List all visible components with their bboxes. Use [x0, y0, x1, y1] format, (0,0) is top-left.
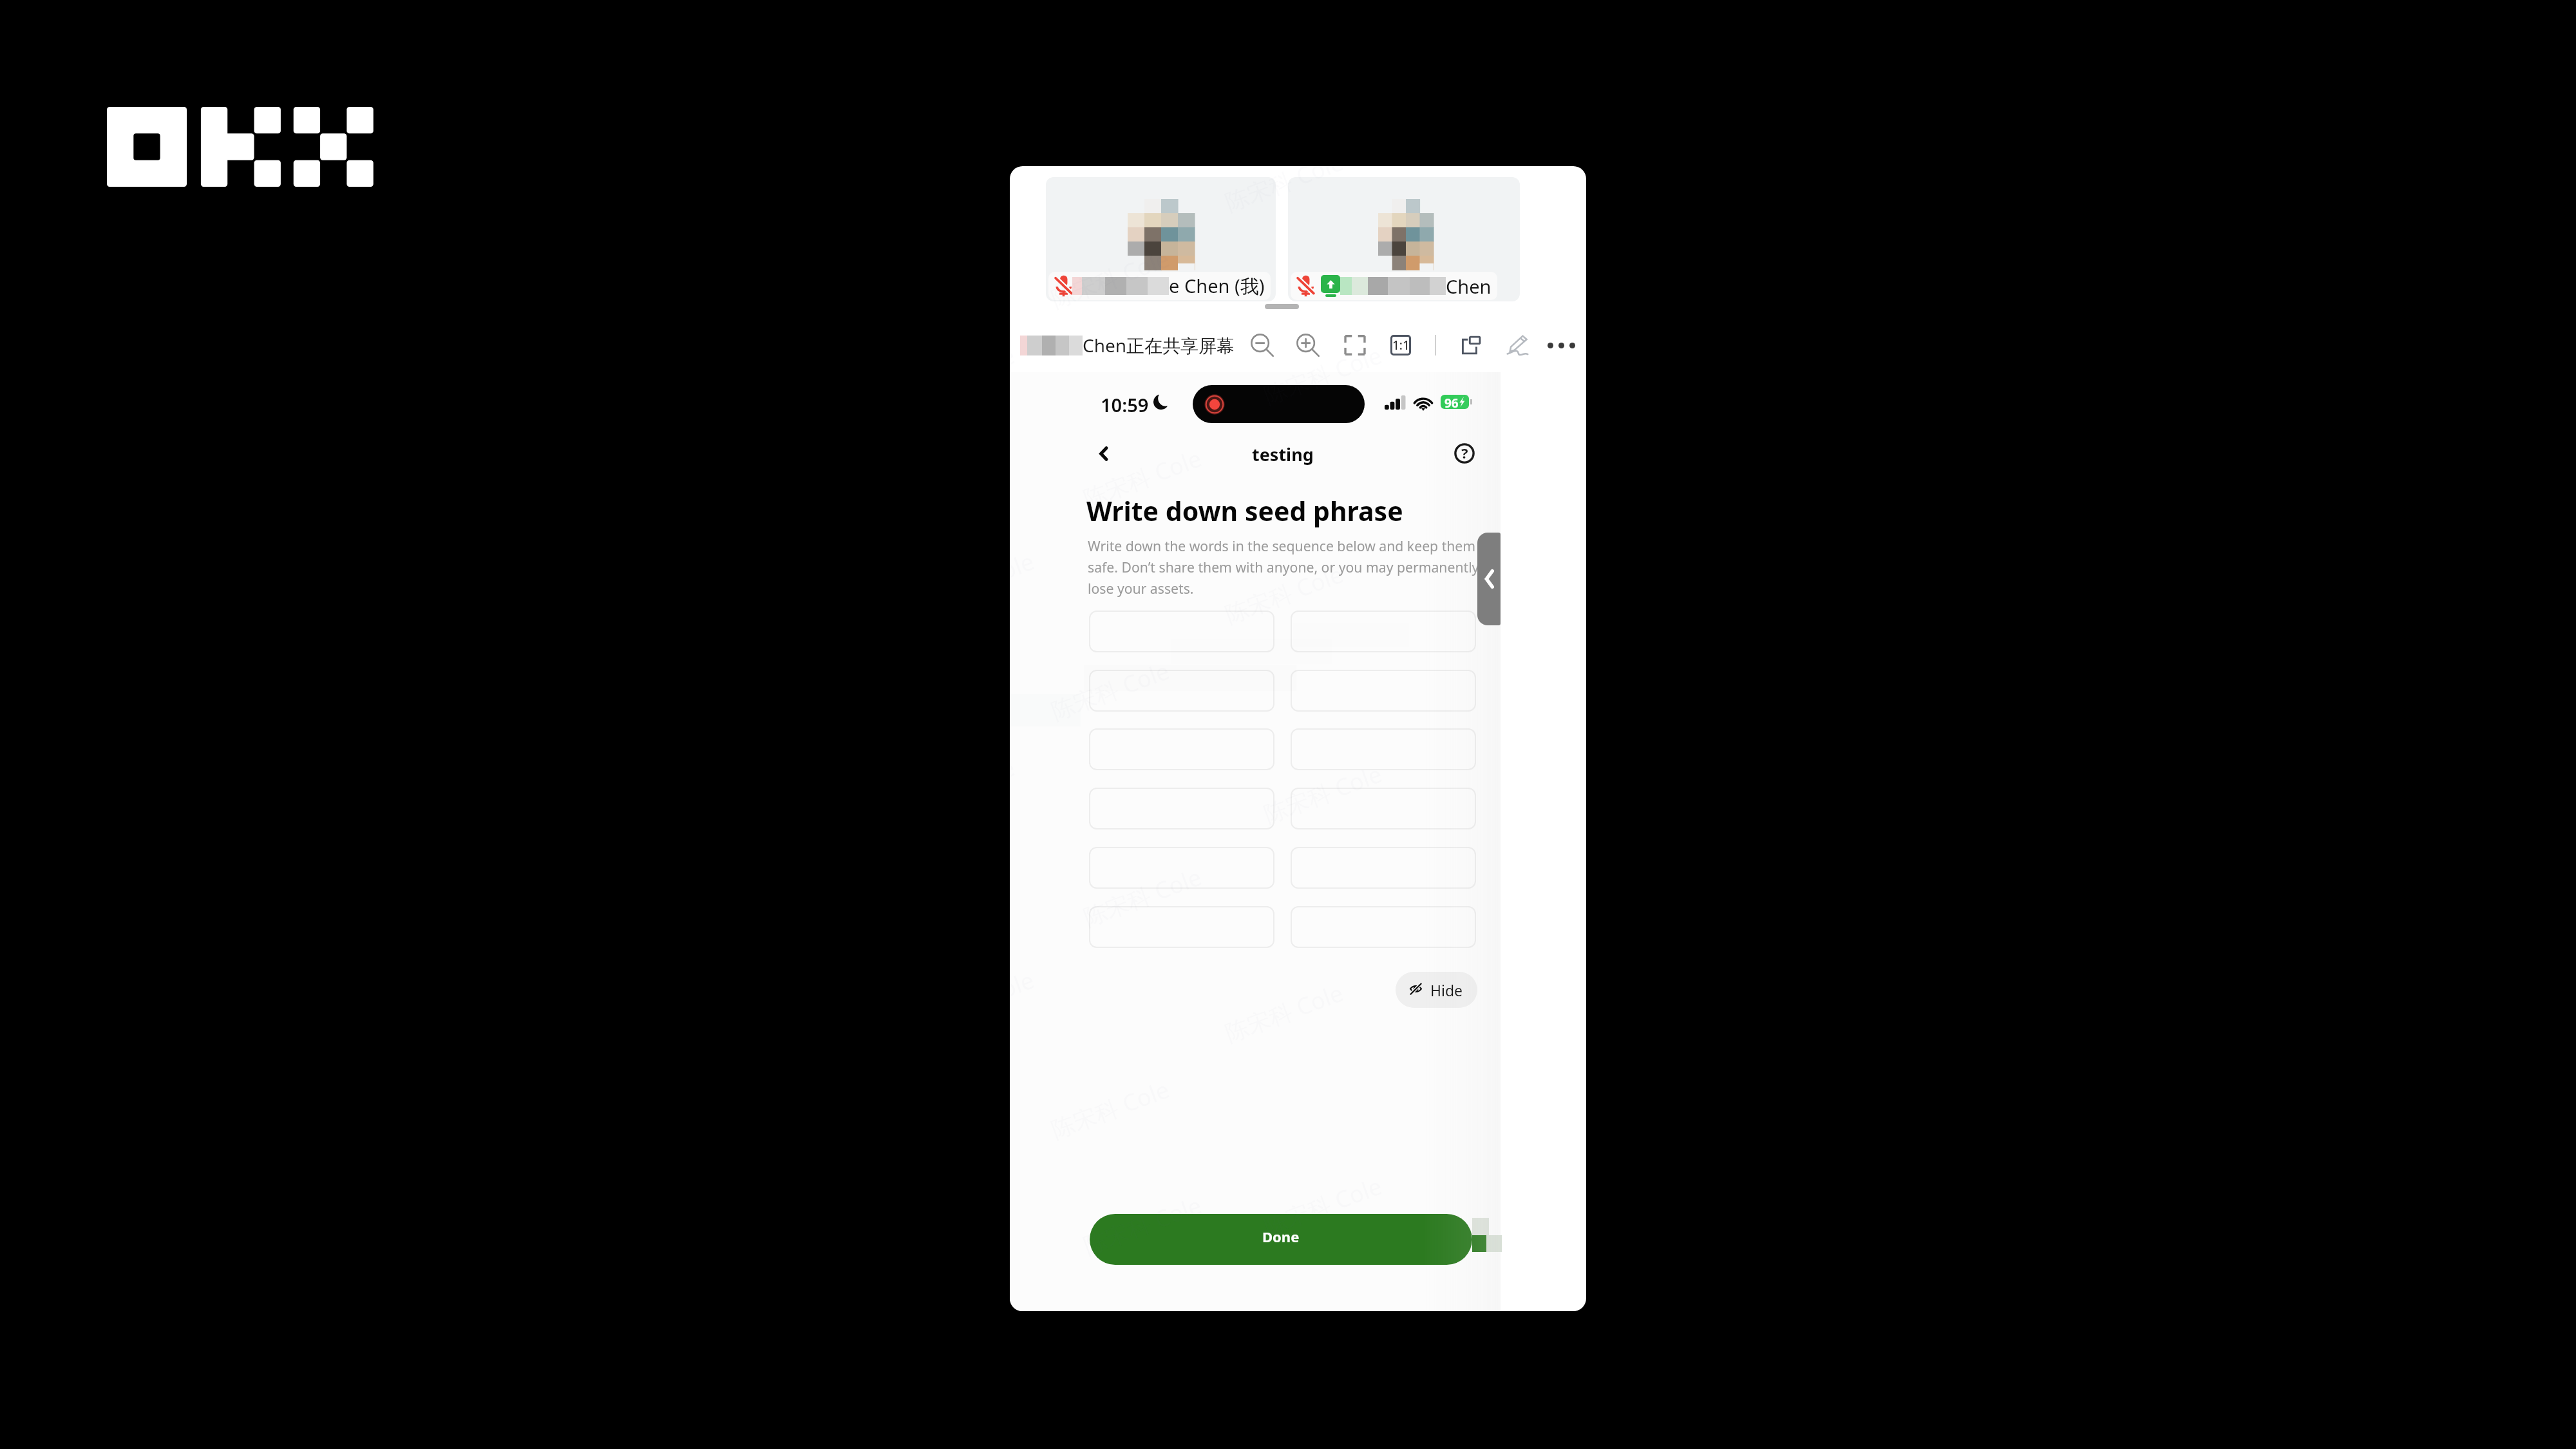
- button[interactable]: Zoom in: [1293, 330, 1323, 360]
- button[interactable]: [1291, 728, 1476, 770]
- button[interactable]: Collapse shared screen: [1477, 533, 1501, 625]
- staticText: 陈宋科 Cole: [1047, 243, 1174, 314]
- staticText: e Chen (我): [1169, 273, 1265, 299]
- button[interactable]: Zoom out: [1247, 330, 1277, 360]
- staticText: Hide: [1430, 980, 1463, 1000]
- staticText: Done: [1262, 1227, 1300, 1246]
- button[interactable]: [1291, 847, 1476, 889]
- button[interactable]: Annotate: [1503, 330, 1533, 360]
- staticText: Chen: [1446, 274, 1492, 299]
- button[interactable]: [1291, 670, 1476, 712]
- staticText: 陈宋科 Cole: [1221, 558, 1348, 630]
- button[interactable]: Back: [1086, 436, 1121, 471]
- staticText: Write down the words in the sequence bel…: [1088, 536, 1482, 598]
- button[interactable]: [1089, 906, 1274, 948]
- button[interactable]: Help: [1447, 436, 1482, 471]
- button[interactable]: [1291, 788, 1476, 829]
- button[interactable]: e Chen (我): [1046, 177, 1276, 301]
- button[interactable]: [1089, 728, 1274, 770]
- staticText: Write down seed phrase: [1086, 493, 1403, 529]
- staticText: 陈宋科 Cole: [1079, 1189, 1206, 1261]
- staticText: 96: [1444, 395, 1459, 409]
- staticText: 陈宋科 Cole: [1259, 758, 1386, 830]
- button[interactable]: Fit to screen: [1340, 330, 1370, 360]
- button[interactable]: Done: [1090, 1214, 1472, 1265]
- button[interactable]: Hide: [1396, 972, 1477, 1008]
- staticText: 陈宋科 Cole: [1221, 166, 1348, 218]
- staticText: testing: [1252, 442, 1314, 466]
- button[interactable]: [1089, 611, 1274, 652]
- staticText: 陈宋科 Cole: [1047, 655, 1174, 727]
- staticText: 陈宋科 Cole: [1259, 1170, 1386, 1242]
- staticText: 陈宋科 Cole: [1079, 861, 1206, 933]
- button[interactable]: [1291, 611, 1476, 652]
- button[interactable]: [1089, 670, 1274, 712]
- button[interactable]: Actual size: [1386, 330, 1416, 360]
- staticText: 10:59: [1101, 392, 1149, 417]
- staticText: 陈宋科 Cole: [1079, 442, 1206, 514]
- button[interactable]: More options: [1546, 330, 1576, 360]
- button[interactable]: [1089, 847, 1274, 889]
- staticText: 1:1: [1392, 337, 1410, 354]
- staticText: Chen正在共享屏幕: [1083, 333, 1235, 357]
- button[interactable]: Picture in picture: [1457, 330, 1486, 360]
- button[interactable]: [1089, 788, 1274, 829]
- button[interactable]: Chen: [1288, 177, 1520, 301]
- staticText: ?: [1461, 443, 1468, 462]
- button[interactable]: [1291, 906, 1476, 948]
- staticText: 陈宋科 Cole: [1259, 339, 1386, 411]
